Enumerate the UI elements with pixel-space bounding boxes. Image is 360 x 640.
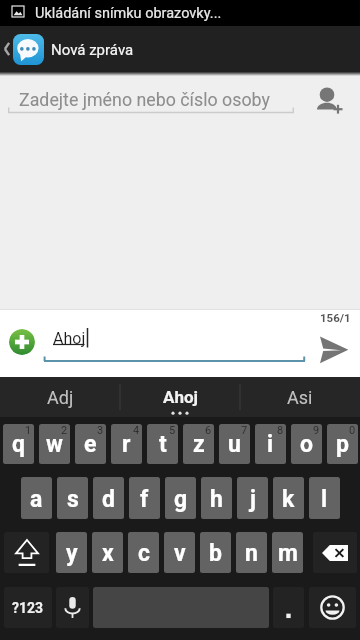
staticText: j	[250, 486, 256, 513]
button[interactable]: Attach	[9, 329, 35, 355]
button[interactable]: d	[93, 477, 124, 519]
button[interactable]: j	[237, 477, 268, 519]
staticText: 2	[61, 424, 68, 437]
button[interactable]: q	[3, 424, 34, 464]
staticText: 3	[97, 424, 104, 437]
button[interactable]: z	[183, 424, 214, 464]
button[interactable]: g	[165, 477, 196, 519]
staticText: 9	[313, 424, 320, 437]
button[interactable]: Nová zpráva	[0, 26, 360, 72]
staticText: x	[102, 540, 114, 567]
staticText: g	[174, 486, 188, 513]
staticText: z	[193, 431, 205, 458]
button[interactable]: Send	[318, 335, 350, 365]
button[interactable]: Asi	[240, 377, 360, 417]
staticText: 156/1	[320, 311, 351, 324]
staticText: e	[84, 431, 97, 458]
staticText: 8	[277, 424, 284, 437]
staticText: c	[138, 540, 150, 567]
button[interactable]: Period	[273, 587, 304, 628]
staticText: q	[12, 431, 25, 458]
button[interactable]: p	[327, 424, 358, 464]
staticText: u	[228, 431, 241, 458]
staticText: a	[30, 486, 43, 513]
button[interactable]: Shift	[4, 532, 49, 573]
button[interactable]: Add contact	[312, 80, 346, 114]
staticText: Asi	[287, 387, 313, 408]
staticText: Ahoj	[163, 387, 198, 407]
button[interactable]: a	[21, 477, 52, 519]
staticText: w	[46, 431, 63, 458]
button[interactable]: y	[56, 532, 87, 573]
staticText: d	[102, 486, 115, 513]
button[interactable]: Emoji	[309, 587, 356, 628]
staticText: m	[278, 540, 298, 567]
button[interactable]: w	[39, 424, 70, 464]
staticText: 5	[169, 424, 176, 437]
staticText: 0	[349, 424, 356, 437]
button[interactable]: f	[129, 477, 160, 519]
button[interactable]: i	[255, 424, 286, 464]
button[interactable]: n	[236, 532, 267, 573]
button[interactable]: t	[147, 424, 178, 464]
button[interactable]: Symbols	[4, 587, 52, 628]
staticText: k	[282, 486, 295, 513]
staticText: Nová zpráva	[51, 41, 134, 59]
button[interactable]: o	[291, 424, 322, 464]
staticText: t	[159, 431, 167, 458]
staticText: Ukládání snímku obrazovky...	[35, 5, 222, 22]
button[interactable]: Backspace	[313, 532, 357, 573]
staticText: v	[174, 540, 186, 567]
staticText: y	[66, 540, 78, 567]
button[interactable]: b	[200, 532, 231, 573]
staticText: Zadejte jméno nebo číslo osoby	[19, 89, 270, 110]
staticText: Ahoj	[53, 329, 86, 348]
staticText: n	[245, 540, 258, 567]
button[interactable]: l	[309, 477, 340, 519]
button[interactable]: Voice input	[56, 587, 89, 628]
button[interactable]: v	[164, 532, 195, 573]
staticText: 1	[25, 424, 32, 437]
staticText: 4	[133, 424, 140, 437]
staticText: h	[210, 486, 223, 513]
staticText: o	[300, 431, 313, 458]
button[interactable]: m	[272, 532, 303, 573]
staticText: Adj	[47, 387, 74, 408]
staticText: p	[336, 431, 349, 458]
staticText: 6	[205, 424, 212, 437]
button[interactable]: h	[201, 477, 232, 519]
button[interactable]: x	[92, 532, 123, 573]
button[interactable]: u	[219, 424, 250, 464]
staticText: i	[267, 431, 274, 458]
button[interactable]: e	[75, 424, 106, 464]
button[interactable]: c	[128, 532, 159, 573]
button[interactable]: Ahoj	[120, 377, 240, 417]
button[interactable]: Adj	[0, 377, 120, 417]
staticText: r	[122, 431, 131, 458]
button[interactable]: k	[273, 477, 304, 519]
staticText: l	[321, 486, 328, 513]
button[interactable]: s	[57, 477, 88, 519]
staticText: s	[67, 486, 79, 513]
staticText: b	[209, 540, 222, 567]
staticText: 7	[241, 424, 248, 437]
staticText: ?123	[12, 600, 44, 616]
button[interactable]: r	[111, 424, 142, 464]
staticText: f	[140, 486, 149, 513]
